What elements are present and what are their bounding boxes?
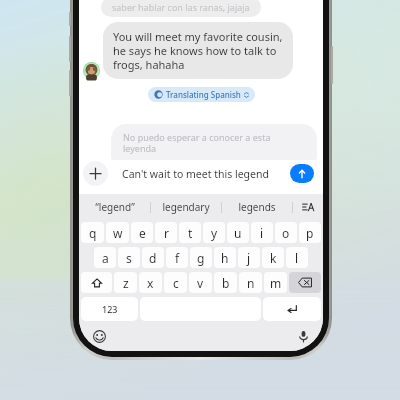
- button[interactable]: m: [264, 272, 287, 293]
- button[interactable]: z: [114, 272, 137, 293]
- button[interactable]: l: [286, 247, 308, 268]
- button[interactable]: t: [179, 222, 201, 243]
- staticText: m: [270, 275, 282, 291]
- button[interactable]: x: [139, 272, 162, 293]
- button[interactable]: k: [262, 247, 284, 268]
- staticText: b: [222, 275, 230, 291]
- staticText: q: [89, 225, 97, 241]
- staticText: legendary: [162, 200, 210, 214]
- button[interactable]: Can't wait to meet this legend: [111, 161, 317, 186]
- button[interactable]: h: [214, 247, 236, 268]
- button[interactable]: q: [81, 222, 104, 243]
- staticText: i: [260, 225, 264, 241]
- staticText: j: [247, 250, 251, 266]
- button[interactable]: i: [251, 222, 273, 243]
- staticText: g: [197, 250, 205, 266]
- button[interactable]: Emoji: [90, 327, 108, 345]
- staticText: u: [234, 225, 242, 241]
- staticText: v: [197, 275, 204, 291]
- staticText: c: [173, 275, 179, 291]
- staticText: legends: [238, 200, 276, 214]
- button[interactable]: j: [238, 247, 260, 268]
- button[interactable]: f: [166, 247, 188, 268]
- staticText: z: [123, 275, 129, 291]
- staticText: Can't wait to meet this legend: [122, 167, 286, 181]
- button[interactable]: 123: [81, 297, 138, 321]
- button[interactable]: Return: [263, 297, 321, 321]
- button[interactable]: o: [275, 222, 297, 243]
- staticText: h: [221, 250, 229, 266]
- button[interactable]: You will meet my favorite cousin, he say…: [103, 22, 293, 79]
- button[interactable]: w: [106, 222, 129, 243]
- staticText: 123: [102, 303, 118, 315]
- button[interactable]: u: [227, 222, 249, 243]
- staticText: x: [147, 275, 154, 291]
- button[interactable]: “legend”: [79, 197, 150, 217]
- button[interactable]: Add attachment: [83, 161, 108, 186]
- staticText: y: [211, 225, 218, 241]
- staticText: You will meet my favorite cousin, he say…: [113, 29, 283, 72]
- staticText: k: [270, 250, 277, 266]
- button[interactable]: v: [189, 272, 212, 293]
- button[interactable]: b: [214, 272, 237, 293]
- staticText: s: [126, 250, 132, 266]
- button[interactable]: g: [190, 247, 212, 268]
- staticText: saber hablar con las ranas, jajaja: [112, 1, 250, 13]
- button[interactable]: r: [155, 222, 177, 243]
- button[interactable]: legends: [222, 197, 292, 217]
- button[interactable]: Shift: [81, 272, 112, 293]
- button[interactable]: Dictate: [294, 327, 312, 345]
- button[interactable]: s: [118, 247, 140, 268]
- staticText: t: [188, 225, 193, 241]
- staticText: r: [164, 225, 169, 241]
- button[interactable]: y: [203, 222, 225, 243]
- staticText: a: [102, 250, 109, 266]
- button[interactable]: Backspace: [289, 272, 321, 293]
- staticText: p: [306, 225, 314, 241]
- button[interactable]: Send: [290, 164, 314, 183]
- staticText: f: [175, 250, 180, 266]
- staticText: “legend”: [95, 200, 135, 214]
- button[interactable]: Formatting: [293, 197, 323, 217]
- button[interactable]: e: [131, 222, 153, 243]
- button[interactable]: d: [142, 247, 164, 268]
- button[interactable]: c: [164, 272, 187, 293]
- staticText: l: [295, 250, 299, 266]
- staticText: Translating Spanish: [166, 89, 241, 100]
- button[interactable]: a: [94, 247, 116, 268]
- staticText: w: [113, 225, 123, 241]
- button[interactable]: p: [299, 222, 321, 243]
- staticText: No puedo esperar a conocer a esta leyend…: [123, 131, 271, 155]
- button[interactable]: legendary: [151, 197, 221, 217]
- staticText: d: [149, 250, 157, 266]
- staticText: o: [282, 225, 290, 241]
- staticText: e: [139, 225, 146, 241]
- staticText: n: [247, 275, 255, 291]
- button[interactable]: n: [239, 272, 262, 293]
- button[interactable]: Translating Spanish: [148, 87, 255, 102]
